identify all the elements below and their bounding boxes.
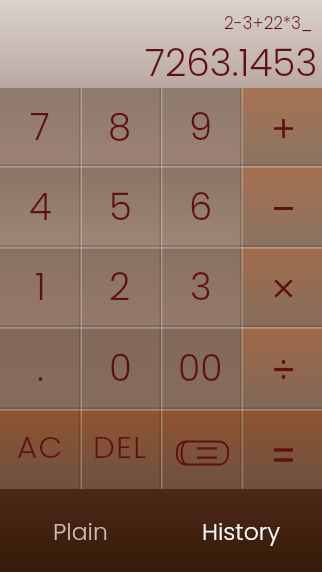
button[interactable]: Plain xyxy=(0,489,161,572)
button[interactable]: 3 xyxy=(160,247,241,327)
button[interactable]: Equals xyxy=(241,409,322,489)
staticText: 8 xyxy=(108,101,132,153)
button[interactable]: 0 xyxy=(80,327,160,409)
staticText: 00 xyxy=(178,343,223,393)
staticText: 7263.1453 xyxy=(145,37,318,89)
button[interactable]: 6 xyxy=(160,166,241,247)
button[interactable]: 00 xyxy=(160,327,241,409)
button[interactable]: 8 xyxy=(80,88,160,166)
button[interactable]: 7 xyxy=(0,88,80,166)
button[interactable]: 2 xyxy=(80,247,160,327)
button[interactable]: Plus xyxy=(241,88,322,166)
button[interactable]: History xyxy=(161,489,322,572)
staticText: AC xyxy=(17,425,64,468)
button[interactable]: DEL xyxy=(80,409,160,489)
staticText: 3 xyxy=(190,261,212,313)
staticText: . xyxy=(37,342,44,394)
staticText: History xyxy=(202,515,281,548)
staticText: 5 xyxy=(109,181,132,233)
staticText: 0 xyxy=(109,342,132,394)
staticText: 6 xyxy=(189,181,213,233)
staticText: 2 xyxy=(109,261,131,313)
button[interactable]: Backspace xyxy=(160,409,241,489)
staticText: 9 xyxy=(189,101,213,153)
staticText: 1 xyxy=(35,261,46,313)
button[interactable]: . xyxy=(0,327,80,409)
staticText: Plain xyxy=(53,515,108,548)
button[interactable]: Divide xyxy=(241,327,322,409)
button[interactable]: Multiply xyxy=(241,247,322,327)
staticText: 2-3+22*3_ xyxy=(224,11,313,35)
button[interactable]: 9 xyxy=(160,88,241,166)
button[interactable]: 4 xyxy=(0,166,80,247)
staticText: 4 xyxy=(29,181,52,233)
button[interactable]: Minus xyxy=(241,166,322,247)
button[interactable]: 5 xyxy=(80,166,160,247)
button[interactable]: 1 xyxy=(0,247,80,327)
staticText: 7 xyxy=(30,101,50,153)
staticText: DEL xyxy=(93,425,148,468)
button[interactable]: AC xyxy=(0,409,80,489)
